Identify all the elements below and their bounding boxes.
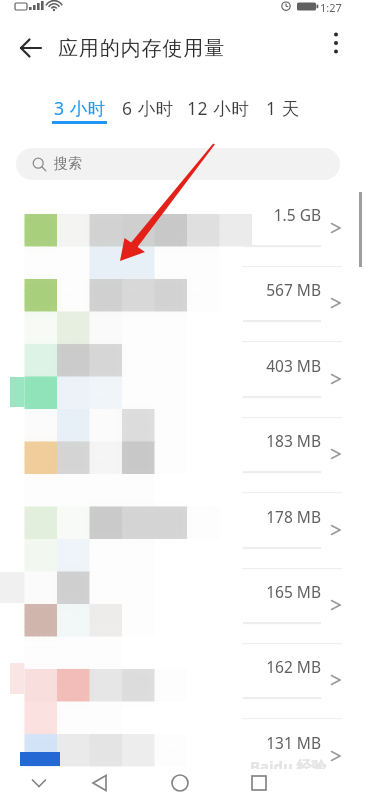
button[interactable]: 3 小时 [44,90,115,126]
staticText: 131 MB [200,732,321,753]
button[interactable]: 1.5 GB [0,192,365,267]
button[interactable]: 12 小时 [177,90,259,126]
staticText: jingyan.baidu.com [266,775,327,785]
button[interactable]: 567 MB [0,267,365,342]
button[interactable]: More options [325,32,347,54]
button[interactable]: 403 MB [0,343,365,418]
button[interactable]: Back [76,769,124,801]
staticText: Baidu 经验 [250,756,327,776]
staticText: 183 MB [200,430,321,451]
staticText: 6 小时 [122,96,174,120]
button[interactable]: Home [156,769,204,801]
staticText: 搜索 [54,155,82,173]
staticText: 3 小时 [54,96,106,120]
staticText: 403 MB [200,355,321,376]
staticText: 178 MB [200,506,321,527]
button[interactable]: 183 MB [0,418,365,493]
button[interactable]: Recents [235,769,283,801]
staticText: 1.5 GB [200,204,321,225]
button[interactable]: 131 MB [0,720,365,795]
button[interactable]: 6 小时 [111,90,184,126]
staticText: 165 MB [200,581,321,602]
staticText: 应用的内存使用量 [58,36,226,61]
button[interactable]: 搜索 [16,148,340,180]
staticText: 567 MB [200,279,321,300]
staticText: 162 MB [200,656,321,677]
staticText: 12 小时 [187,96,250,120]
button[interactable]: 1 天 [260,90,306,126]
button[interactable]: 165 MB [0,569,365,644]
button[interactable]: Hide keyboard [15,769,63,801]
button[interactable]: Back [13,30,49,66]
staticText: 1:27 [320,0,342,15]
button[interactable]: 178 MB [0,494,365,569]
staticText: 1 天 [266,96,300,120]
button[interactable]: 162 MB [0,644,365,719]
